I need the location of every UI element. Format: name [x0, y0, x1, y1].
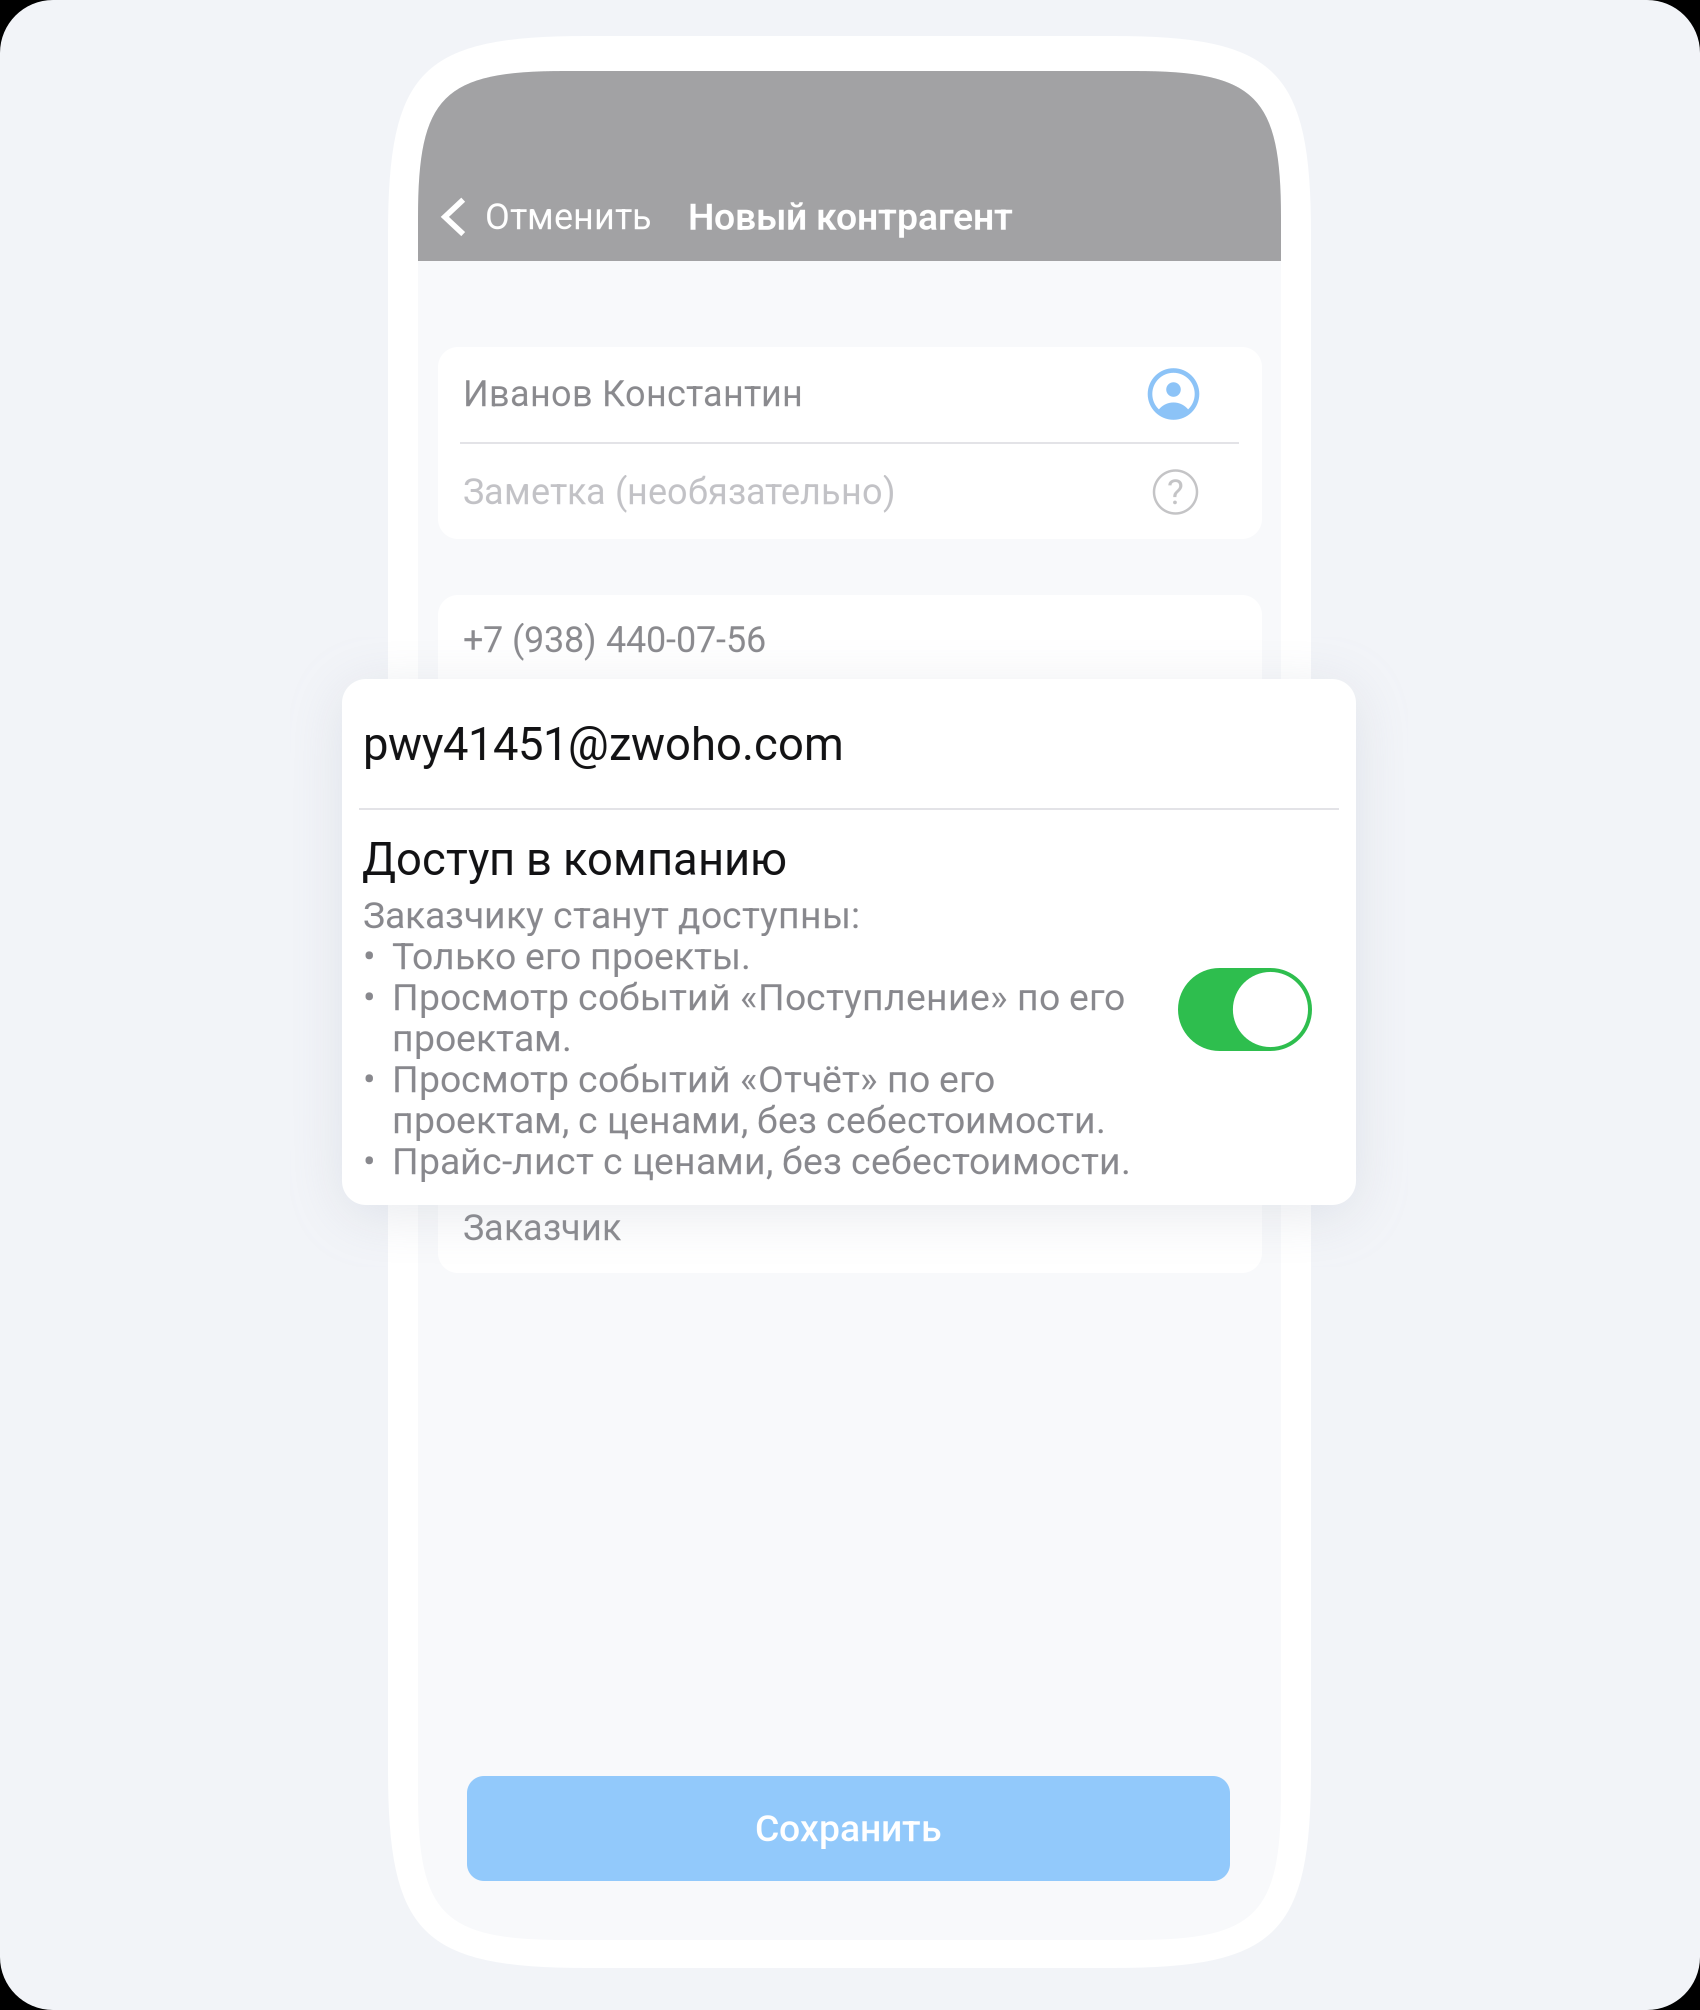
- staticText: Отменить: [485, 196, 652, 238]
- staticText: проектам.: [485, 958, 627, 993]
- staticText: Прайс-лист с ценами, без себестоимости.: [392, 1140, 1131, 1183]
- staticText: • Просмотр событий «Отчёт» по его: [463, 991, 957, 1026]
- staticText: • Только его проекты.: [463, 892, 771, 927]
- staticText: Доступ в компанию: [463, 813, 804, 855]
- button[interactable]: Доступ в компанию, включено: [1178, 968, 1312, 1051]
- staticText: pwy41451@zwoho.com: [463, 717, 847, 759]
- button[interactable]: +7 (938) 440-07-56: [438, 592, 1262, 688]
- staticText: •: [363, 1140, 376, 1183]
- staticText: •: [363, 1058, 376, 1101]
- button[interactable]: Выбрать из контактов: [1150, 370, 1197, 417]
- staticText: Заказчику станут доступны:: [463, 859, 852, 894]
- staticText: Просмотр событий «Отчёт» по его: [392, 1058, 995, 1101]
- button[interactable]: pwy41451@zwoho.com: [438, 690, 1262, 786]
- staticText: pwy41451@zwoho.com: [363, 718, 844, 771]
- staticText: Просмотр событий «Поступление» по его: [392, 976, 1125, 1019]
- button[interactable]: Заметка (необязательно): [438, 444, 1262, 540]
- button[interactable]: Заказчик: [438, 1180, 1262, 1276]
- staticText: • Просмотр событий «Поступление» по его: [463, 925, 1059, 960]
- staticText: ?: [1167, 471, 1184, 513]
- button[interactable]: Справка о заметке: [1154, 470, 1197, 513]
- staticText: проектам, с ценами, без себестоимости.: [392, 1099, 1106, 1142]
- staticText: Заметка (необязательно): [463, 471, 896, 513]
- staticText: +7 (938) 440-07-56: [463, 619, 766, 661]
- staticText: •: [363, 976, 376, 1019]
- button[interactable]: Иванов Константин: [438, 346, 1262, 442]
- staticText: Заказчик: [463, 1207, 621, 1249]
- staticText: Заказчику станут доступны:: [363, 894, 860, 937]
- staticText: Сохранить: [755, 1807, 942, 1850]
- staticText: проектам.: [392, 1017, 572, 1060]
- button[interactable]: Отменить: [418, 185, 652, 249]
- staticText: •: [363, 935, 376, 978]
- staticText: Иванов Константин: [463, 373, 803, 415]
- button[interactable]: Сохранить: [467, 1776, 1230, 1881]
- staticText: Новый контрагент: [688, 195, 1013, 239]
- staticText: Только его проекты.: [392, 935, 751, 978]
- staticText: Доступ в компанию: [362, 833, 787, 886]
- staticText: • Прайс-лист с ценами, без себестоимости…: [463, 1057, 1063, 1092]
- staticText: проектам, с ценами, без себестоимости.: [485, 1024, 1045, 1059]
